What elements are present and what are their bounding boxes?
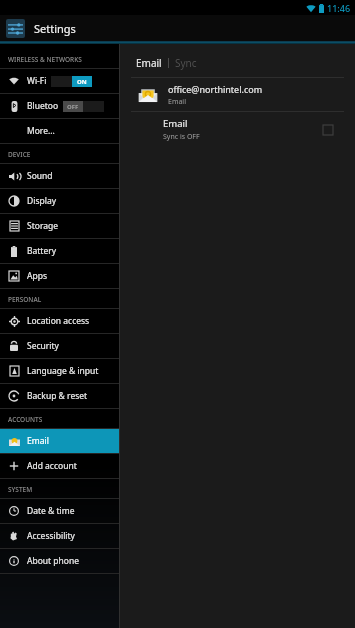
staticText: Sync is OFF <box>163 132 200 142</box>
staticText: Add account <box>27 460 77 472</box>
staticText: Sound <box>27 170 53 182</box>
staticText: Accessibility <box>27 530 75 542</box>
button[interactable]: Turn off <box>51 76 92 87</box>
button[interactable]: Add account <box>0 454 119 478</box>
staticText: More... <box>27 125 55 137</box>
button[interactable]: Email <box>0 429 119 453</box>
staticText: Email <box>168 97 186 107</box>
staticText: Wi-Fi <box>27 75 47 87</box>
staticText: WIRELESS & NETWORKS <box>8 55 82 64</box>
staticText: Storage <box>27 220 59 232</box>
staticText: PERSONAL <box>8 295 42 304</box>
staticText: SYSTEM <box>8 485 33 494</box>
staticText: About phone <box>27 555 80 567</box>
button[interactable]: Backup & reset <box>0 384 119 408</box>
button[interactable]: Apps <box>0 264 119 288</box>
button[interactable]: About phone <box>0 549 119 573</box>
button[interactable]: Email <box>120 112 355 147</box>
button[interactable]: Date & time <box>0 499 119 523</box>
staticText: Location access <box>27 315 90 327</box>
staticText: office@northintel.com <box>168 83 263 95</box>
staticText: Security <box>27 340 59 352</box>
staticText: Bluetoo <box>27 100 59 112</box>
button[interactable]: Display <box>0 189 119 213</box>
button[interactable]: Location access <box>0 309 119 333</box>
staticText: Apps <box>27 270 47 282</box>
staticText: Battery <box>27 245 57 257</box>
staticText: Sync <box>175 56 197 70</box>
staticText: Backup & reset <box>27 390 88 402</box>
staticText: Language & input <box>27 365 99 377</box>
staticText: ACCOUNTS <box>8 415 43 424</box>
staticText: Email <box>163 117 188 130</box>
button[interactable]: Sync checkbox <box>323 125 333 135</box>
button[interactable]: Language & input <box>0 359 119 383</box>
staticText: DEVICE <box>8 150 31 159</box>
staticText: OFF <box>67 103 79 111</box>
button[interactable]: Turn on <box>63 101 104 112</box>
button[interactable]: office@northintel.com <box>120 78 355 111</box>
staticText: Date & time <box>27 505 75 517</box>
staticText: Email <box>136 56 162 70</box>
button[interactable]: Accessibility <box>0 524 119 548</box>
button[interactable]: Security <box>0 334 119 358</box>
other: Settings <box>6 19 25 38</box>
staticText: Email <box>27 435 49 447</box>
button[interactable]: Sound <box>0 164 119 188</box>
staticText: ON <box>77 78 87 86</box>
staticText: Settings <box>34 21 76 36</box>
button[interactable]: More... <box>0 119 119 143</box>
button[interactable]: Storage <box>0 214 119 238</box>
staticText: 11:46 <box>327 2 351 14</box>
button[interactable]: Bluetoo <box>0 94 119 118</box>
button[interactable]: Battery <box>0 239 119 263</box>
staticText: Display <box>27 195 56 207</box>
button[interactable]: Wi-Fi <box>0 69 119 93</box>
